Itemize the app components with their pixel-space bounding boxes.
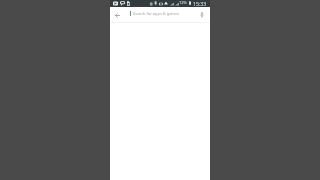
staticText: Search for apps & games [133, 11, 180, 16]
button[interactable]: Voice search [197, 9, 207, 19]
button[interactable]: Back [112, 10, 123, 21]
staticText: 15:33 [193, 0, 207, 7]
button[interactable]: Search for apps & games [125, 7, 195, 22]
staticText: 12% [179, 0, 187, 5]
